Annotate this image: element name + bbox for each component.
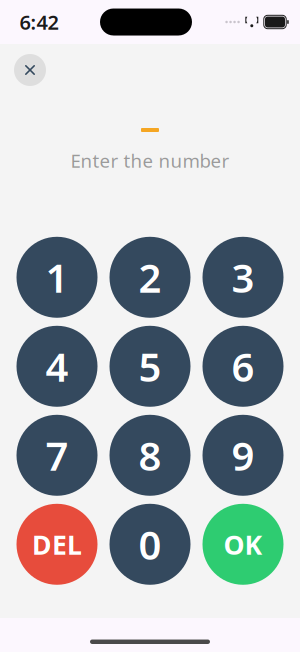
staticText: Enter the number — [70, 148, 229, 173]
staticText: 0 — [138, 518, 161, 571]
staticText: 6:42 — [19, 9, 58, 35]
staticText: DEL — [32, 527, 82, 562]
staticText: 1 — [45, 251, 68, 304]
button[interactable]: 1 — [16, 237, 97, 318]
button[interactable]: 3 — [202, 237, 283, 318]
staticText: 3 — [231, 251, 254, 304]
button[interactable]: OK — [202, 504, 283, 585]
button[interactable]: Close — [14, 54, 46, 86]
button[interactable]: 7 — [16, 415, 97, 496]
button[interactable]: 5 — [109, 326, 190, 407]
button[interactable]: 6 — [202, 326, 283, 407]
staticText: 9 — [231, 429, 254, 482]
staticText: OK — [223, 527, 262, 562]
staticText: 6 — [231, 340, 254, 393]
staticText: 4 — [45, 340, 68, 393]
staticText: 2 — [138, 251, 161, 304]
button[interactable]: 2 — [109, 237, 190, 318]
staticText: 8 — [138, 429, 161, 482]
button[interactable]: 9 — [202, 415, 283, 496]
button[interactable]: 8 — [109, 415, 190, 496]
button[interactable]: 4 — [16, 326, 97, 407]
staticText: 5 — [138, 340, 161, 393]
staticText: 7 — [45, 429, 68, 482]
button[interactable]: 0 — [109, 504, 190, 585]
button[interactable]: DEL — [16, 504, 97, 585]
